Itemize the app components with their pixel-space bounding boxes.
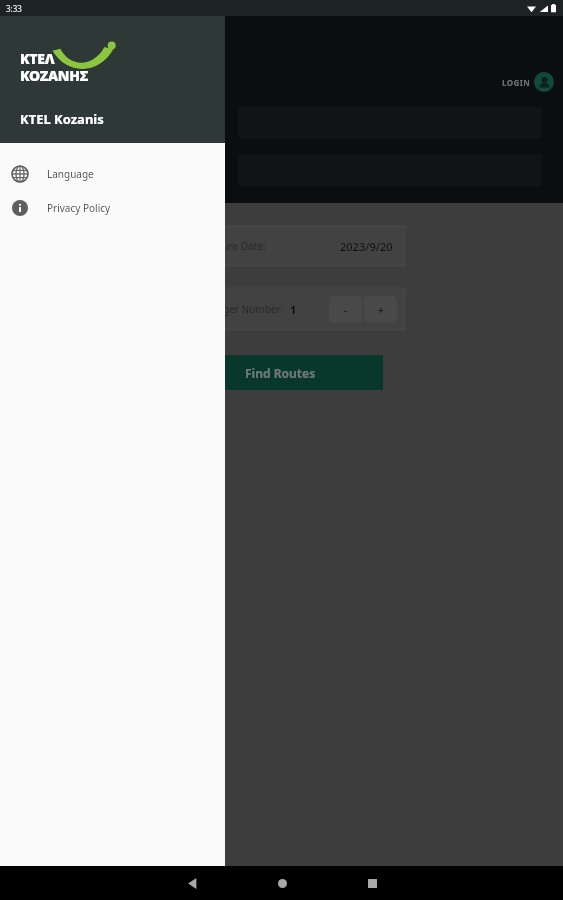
button[interactable]: Privacy Policy (0, 191, 225, 225)
staticText: LOGIN (502, 77, 531, 88)
button[interactable]: Departure Date: (178, 226, 405, 266)
staticText: Passenger Number: (190, 302, 284, 316)
staticText: 3:33 (6, 3, 22, 14)
staticText: Language (47, 167, 94, 181)
staticText: Privacy Policy (47, 201, 111, 215)
staticText: KTEΛ (20, 49, 55, 68)
button[interactable]: LOGIN (500, 68, 556, 96)
staticText: KTEL Kozanis (20, 110, 104, 128)
staticText: - (344, 303, 348, 317)
button[interactable]: Increase passengers (364, 296, 397, 323)
button[interactable]: Home (237, 866, 327, 900)
button[interactable]: Close navigation drawer (0, 0, 563, 866)
button[interactable]: Language (0, 157, 225, 191)
staticText: + (378, 303, 384, 317)
staticText: Departure Date: (190, 239, 266, 253)
staticText: KOZANHΣ (20, 66, 88, 85)
button[interactable]: Back (147, 866, 237, 900)
staticText: 1 (290, 302, 297, 317)
staticText: Find Routes (245, 365, 316, 381)
staticText: 2023/9/20 (340, 239, 393, 254)
button[interactable]: Recent apps (327, 866, 417, 900)
button[interactable]: Find Routes (178, 355, 383, 390)
